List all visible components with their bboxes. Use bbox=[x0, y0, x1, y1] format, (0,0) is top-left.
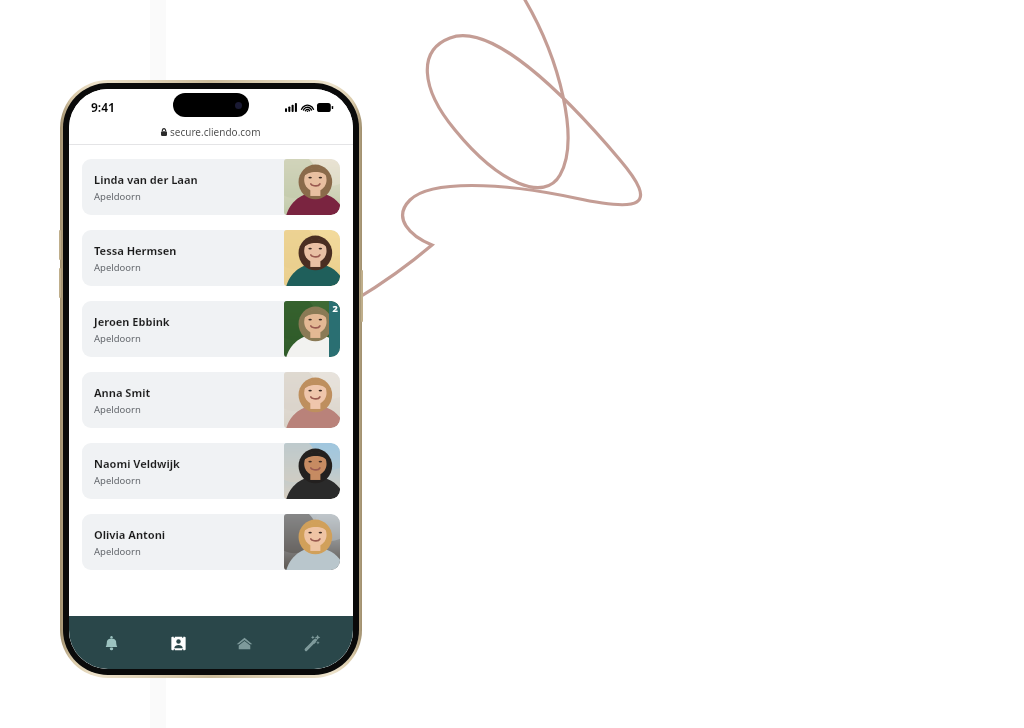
staticText: Apeldoorn bbox=[94, 474, 141, 487]
staticText: Jeroen Ebbink bbox=[94, 314, 170, 329]
staticText: Olivia Antoni bbox=[94, 527, 166, 542]
staticText: Apeldoorn bbox=[94, 545, 141, 558]
button[interactable]: Tessa Hermsen bbox=[82, 230, 340, 286]
button[interactable]: Linda van der Laan bbox=[82, 159, 340, 215]
staticText: 2 bbox=[332, 302, 338, 314]
button[interactable]: Home bbox=[219, 623, 269, 663]
staticText: Apeldoorn bbox=[94, 332, 141, 345]
staticText: secure.cliendo.com bbox=[170, 125, 261, 139]
staticText: Linda van der Laan bbox=[94, 172, 198, 187]
staticText: Apeldoorn bbox=[94, 403, 141, 416]
staticText: Naomi Veldwijk bbox=[94, 456, 180, 471]
button[interactable]: Jeroen Ebbink bbox=[82, 301, 340, 357]
button[interactable]: Contacts bbox=[153, 623, 203, 663]
button[interactable]: Magic bbox=[286, 623, 336, 663]
button[interactable]: Olivia Antoni bbox=[82, 514, 340, 570]
staticText: Anna Smit bbox=[94, 385, 151, 400]
staticText: Apeldoorn bbox=[94, 261, 141, 274]
button[interactable]: Anna Smit bbox=[82, 372, 340, 428]
staticText: Tessa Hermsen bbox=[94, 243, 177, 258]
staticText: 9:41 bbox=[91, 99, 115, 115]
staticText: Apeldoorn bbox=[94, 190, 141, 203]
button[interactable]: Naomi Veldwijk bbox=[82, 443, 340, 499]
button[interactable]: Notifications bbox=[86, 623, 136, 663]
